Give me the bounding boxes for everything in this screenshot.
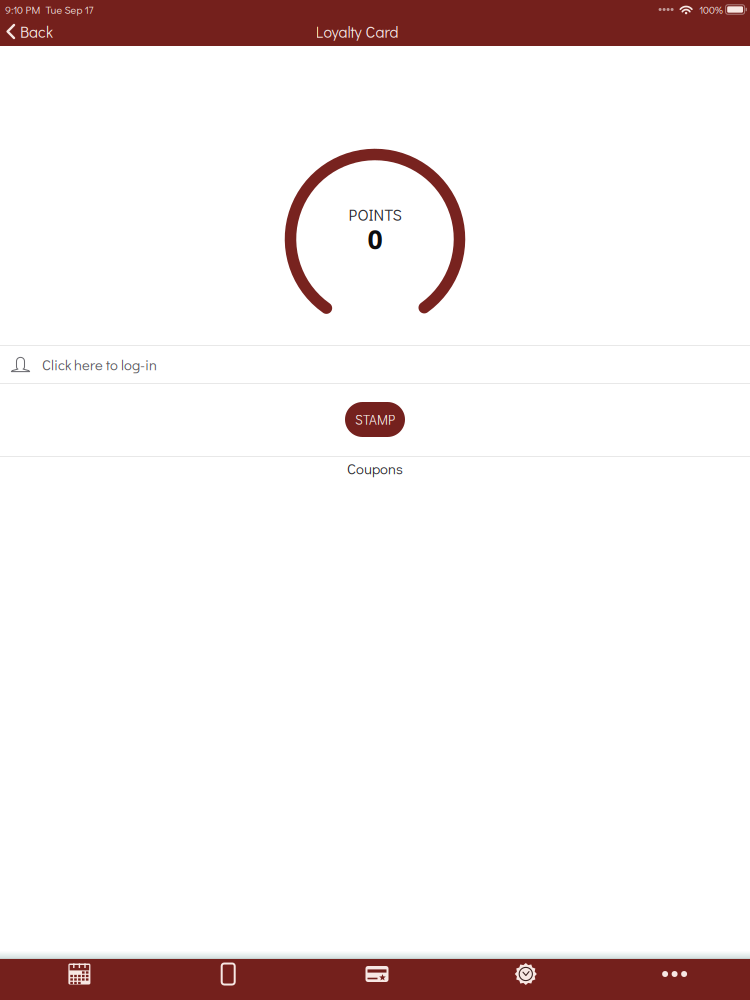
staticText: POINTS	[348, 204, 401, 225]
staticText: Tue Sep 17	[45, 2, 93, 16]
button[interactable]: Offers	[451, 959, 600, 1000]
staticText: Click here to log-in	[42, 355, 157, 374]
staticText: STAMP	[355, 411, 395, 428]
button[interactable]: STAMP	[345, 402, 405, 437]
staticText: 0	[367, 221, 382, 257]
button[interactable]: Loyalty Card	[303, 959, 451, 1000]
button[interactable]: Mobile	[154, 959, 303, 1000]
staticText: PM	[25, 2, 40, 16]
staticText: 100%	[699, 2, 723, 16]
staticText: Coupons	[347, 459, 403, 478]
staticText: 9:10	[5, 2, 23, 16]
button[interactable]: Click here to log-in	[0, 346, 750, 383]
staticText: Loyalty Card	[315, 21, 398, 42]
button[interactable]: Back	[0, 19, 65, 44]
button[interactable]: Calendar	[5, 959, 154, 1000]
staticText: Back	[20, 21, 53, 42]
button[interactable]: More	[600, 959, 749, 1000]
